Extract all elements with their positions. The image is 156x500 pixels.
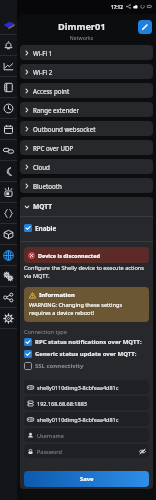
button[interactable]: braces [0, 203, 17, 224]
staticText: WARNING: Changing these settings require… [29, 301, 123, 317]
staticText: Wi-Fi 2 [33, 68, 53, 76]
button[interactable]: clock [0, 98, 17, 119]
staticText: Bluetooth [33, 182, 62, 190]
staticText: 192.168.68.68:1883 [37, 400, 149, 407]
staticText: Cloud [33, 163, 50, 171]
staticText: Enable [35, 224, 57, 233]
button[interactable]: Outbound websocket [20, 121, 153, 136]
staticText: 17:12 [111, 4, 123, 10]
button[interactable]: Cloud [20, 159, 153, 174]
button[interactable]: Password [24, 444, 149, 458]
button[interactable]: RPC over UDP [20, 140, 153, 155]
button[interactable]: cal [0, 119, 17, 140]
staticText: MQTT [33, 202, 52, 211]
button[interactable]: moon [0, 161, 17, 182]
button[interactable]: cube [0, 224, 17, 245]
staticText: Password [37, 448, 139, 455]
staticText: Information [39, 291, 75, 299]
button[interactable]: Save [24, 471, 149, 487]
staticText: Username [37, 432, 149, 439]
staticText: RPC status notifications over MQTT: [35, 338, 142, 346]
button[interactable]: link [0, 140, 17, 161]
button[interactable]: shelly0110dimg3-8cbfeaa4d81c [24, 412, 149, 426]
button[interactable]: Enable [24, 222, 57, 234]
button[interactable]: widget [0, 182, 17, 203]
button[interactable]: share2 [0, 287, 17, 308]
button[interactable]: gear [0, 308, 17, 329]
button[interactable]: MQTT [20, 197, 153, 216]
staticText: RPC over UDP [33, 144, 74, 152]
button[interactable]: Wi-Fi 2 [20, 64, 153, 79]
button[interactable]: Range extender [20, 102, 153, 117]
button[interactable]: bell [0, 35, 17, 56]
button[interactable]: 192.168.68.68:1883 [24, 396, 149, 410]
button[interactable]: Bluetooth [20, 178, 153, 193]
button[interactable]: RPC status notifications over MQTT: [24, 337, 149, 347]
button[interactable]: chart [0, 56, 17, 77]
staticText: shelly0110dimg3-8cbfeaa4d81c [37, 416, 149, 423]
staticText: Device is disconnected [38, 252, 100, 259]
button[interactable]: gears [0, 266, 17, 287]
button[interactable]: Edit [138, 20, 152, 34]
staticText: Range extender [33, 106, 80, 114]
staticText: shelly0110dimg3-8cbfeaa4d81c [37, 384, 149, 391]
button[interactable]: Generic status update over MQTT: [24, 349, 149, 359]
staticText: Connection type [24, 328, 67, 336]
staticText: SSL connectivity [35, 362, 84, 370]
staticText: Outbound websocket [33, 125, 96, 133]
staticText: Networks [17, 34, 146, 41]
button[interactable]: logo [0, 14, 17, 35]
staticText: Wi-Fi 1 [33, 49, 53, 57]
staticText: Configure the Shelly device to execute a… [24, 264, 144, 280]
button[interactable]: book [0, 77, 17, 98]
button[interactable]: Wi-Fi 1 [20, 45, 153, 60]
button[interactable]: Access point [20, 83, 153, 98]
button[interactable]: globe [0, 245, 17, 266]
button[interactable]: SSL connectivity [24, 361, 149, 371]
other: Show password [139, 448, 146, 455]
staticText: Access point [33, 87, 70, 95]
button[interactable]: Username [24, 428, 149, 442]
staticText: Generic status update over MQTT: [35, 350, 137, 358]
staticText: Dimmer01 [58, 20, 106, 33]
button[interactable]: shelly0110dimg3-8cbfeaa4d81c [24, 380, 149, 394]
staticText: Save [80, 475, 94, 483]
